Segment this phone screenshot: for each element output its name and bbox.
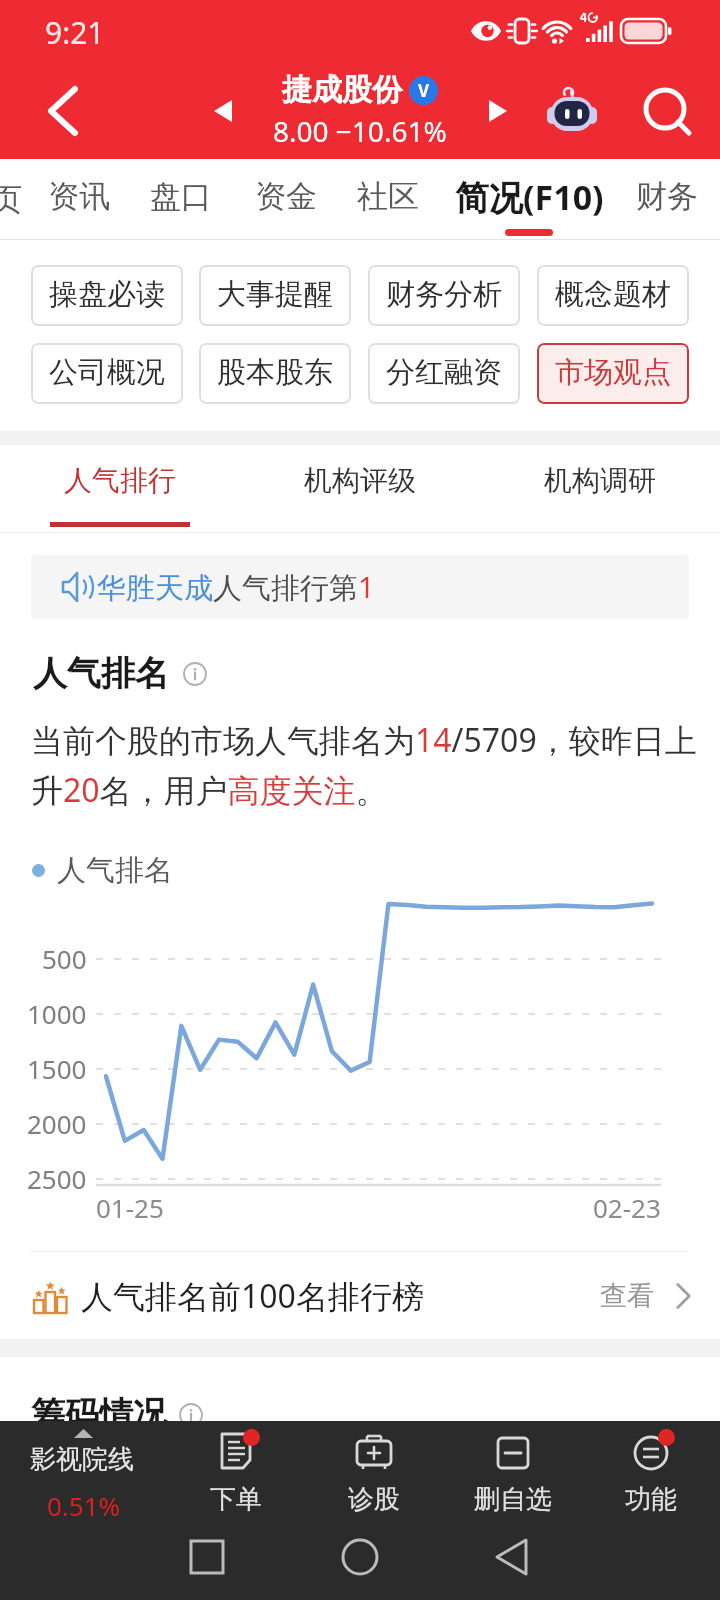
button[interactable]: Home bbox=[323, 1520, 397, 1594]
button[interactable]: 下单 bbox=[166, 1430, 305, 1528]
button[interactable]: 财务 bbox=[607, 159, 720, 240]
button[interactable]: 人气排名前100名排行榜 bbox=[0, 1252, 720, 1339]
staticText: 500 bbox=[42, 941, 87, 976]
staticText: 02-23 bbox=[593, 1190, 661, 1225]
staticText: 股本股东 bbox=[217, 354, 333, 391]
staticText: 页 bbox=[0, 180, 22, 219]
staticText: 财务 bbox=[636, 177, 698, 216]
button[interactable]: Previous stock bbox=[195, 83, 251, 139]
button[interactable]: 删自选 bbox=[443, 1430, 582, 1528]
button[interactable]: 盘口 bbox=[121, 159, 241, 240]
button[interactable]: 华胜天成人气排行第1 bbox=[31, 555, 689, 619]
button[interactable]: 市场观点 bbox=[537, 343, 689, 404]
button[interactable]: 功能 bbox=[581, 1430, 720, 1528]
staticText: 财务分析 bbox=[386, 276, 502, 313]
button[interactable]: 分红融资 bbox=[368, 343, 520, 404]
button[interactable]: 社区 bbox=[328, 159, 448, 240]
button[interactable]: Recents bbox=[170, 1520, 244, 1594]
staticText: 删自选 bbox=[474, 1483, 552, 1516]
staticText: 机构评级 bbox=[304, 463, 416, 498]
button[interactable]: 人气排行 bbox=[0, 445, 240, 533]
staticText: 华胜天成人气排行第1 bbox=[97, 567, 375, 607]
staticText: 人气排行 bbox=[64, 463, 176, 498]
button[interactable]: 资金 bbox=[226, 159, 346, 240]
button[interactable]: 诊股 bbox=[304, 1430, 443, 1528]
staticText: 盘口 bbox=[150, 177, 212, 216]
staticText: 8.00 −10.61% bbox=[273, 112, 447, 150]
button[interactable]: 公司概况 bbox=[31, 343, 183, 404]
staticText: 影视院线 bbox=[30, 1443, 134, 1476]
button[interactable]: AI assistant bbox=[537, 76, 607, 146]
staticText: 机构调研 bbox=[544, 463, 656, 498]
staticText: 功能 bbox=[625, 1483, 677, 1516]
button[interactable]: Info bbox=[179, 1403, 203, 1427]
staticText: 2500 bbox=[27, 1161, 87, 1196]
button[interactable]: Back bbox=[0, 66, 90, 156]
staticText: 公司概况 bbox=[49, 354, 165, 391]
staticText: 资讯 bbox=[48, 177, 110, 216]
button[interactable]: Back bbox=[476, 1520, 550, 1594]
button[interactable]: 股本股东 bbox=[199, 343, 351, 404]
staticText: 人气排名 bbox=[57, 852, 173, 889]
button[interactable]: Next stock bbox=[483, 83, 539, 139]
staticText: 大事提醒 bbox=[217, 276, 333, 313]
staticText: 查看 bbox=[600, 1279, 654, 1313]
button[interactable]: 操盘必读 bbox=[31, 265, 183, 326]
staticText: 简况(F10) bbox=[455, 174, 604, 220]
button[interactable]: 资讯 bbox=[19, 159, 139, 240]
staticText: 01-25 bbox=[96, 1190, 164, 1225]
button[interactable]: 机构评级 bbox=[240, 445, 480, 533]
staticText: 0.51% bbox=[47, 1488, 121, 1523]
staticText: 9:21 bbox=[45, 12, 105, 53]
staticText: 社区 bbox=[357, 177, 419, 216]
button[interactable]: 概念题材 bbox=[537, 265, 689, 326]
staticText: 操盘必读 bbox=[49, 276, 165, 313]
staticText: 当前个股的市场人气排名为14/5709，较昨日上升20名，用户高度关注。 bbox=[31, 718, 702, 811]
button[interactable]: 页 bbox=[0, 159, 32, 240]
button[interactable]: 影视院线 bbox=[0, 1421, 166, 1531]
staticText: 人气排名 bbox=[33, 652, 169, 695]
staticText: 分红融资 bbox=[386, 354, 502, 391]
staticText: 下单 bbox=[210, 1483, 262, 1516]
staticText: 1000 bbox=[27, 996, 87, 1031]
button[interactable]: 机构调研 bbox=[480, 445, 720, 533]
staticText: 筹码情况 bbox=[31, 1393, 167, 1436]
staticText: 概念题材 bbox=[555, 276, 671, 313]
button[interactable]: Search bbox=[627, 75, 699, 147]
button[interactable]: 财务分析 bbox=[368, 265, 520, 326]
button[interactable]: 简况(F10) bbox=[450, 159, 608, 240]
staticText: 诊股 bbox=[348, 1483, 400, 1516]
staticText: 人气排名前100名排行榜 bbox=[81, 1274, 424, 1318]
staticText: 市场观点 bbox=[555, 354, 671, 391]
staticText: 1500 bbox=[27, 1051, 87, 1086]
staticText: 2000 bbox=[27, 1106, 87, 1141]
staticText: 捷成股份 bbox=[282, 71, 402, 109]
staticText: 资金 bbox=[255, 177, 317, 216]
staticText: V bbox=[418, 79, 430, 102]
button[interactable]: Info bbox=[183, 662, 207, 686]
button[interactable]: 大事提醒 bbox=[199, 265, 351, 326]
